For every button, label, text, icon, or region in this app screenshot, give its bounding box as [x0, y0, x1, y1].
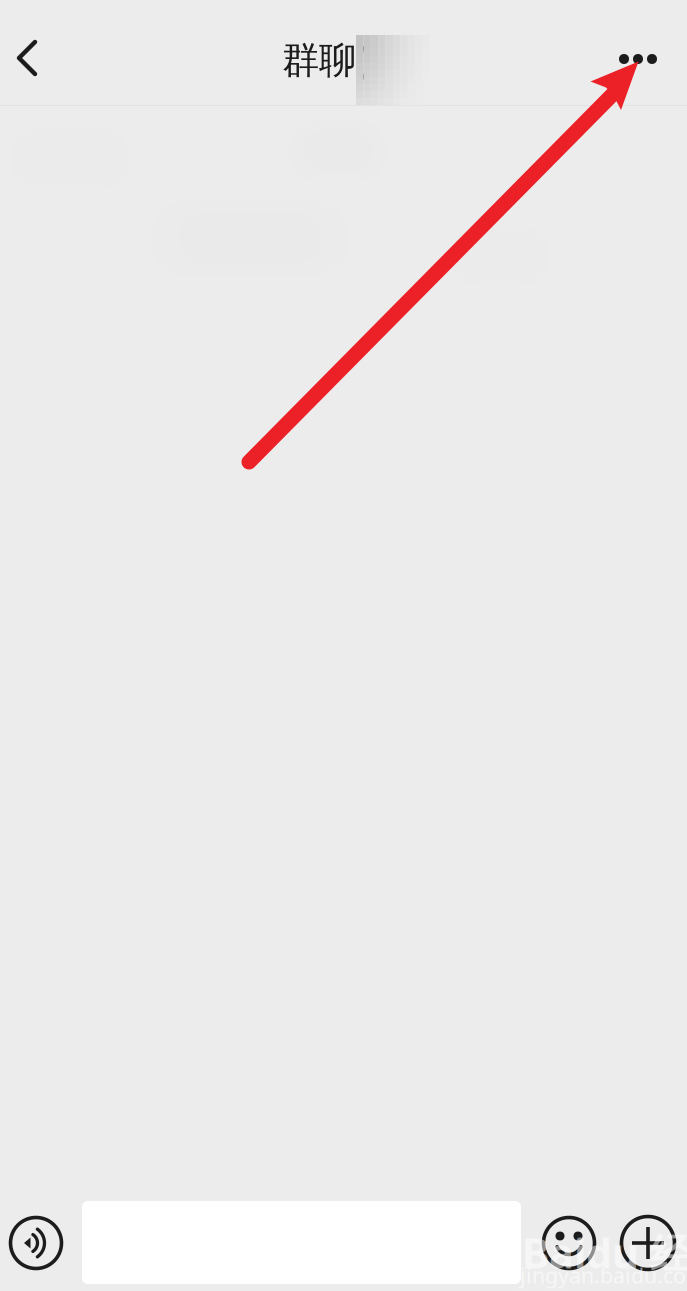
staticText: 群聊( — [282, 34, 368, 84]
staticText: jingyan.baidu.com — [520, 1261, 687, 1289]
button[interactable]: Emoji — [533, 1207, 605, 1279]
button[interactable]: Voice message — [0, 1207, 72, 1279]
staticText: Baidu 经验 — [522, 1225, 687, 1280]
button[interactable]: More options — [612, 1207, 684, 1279]
button[interactable]: More — [603, 29, 673, 89]
button[interactable]: Back — [1, 28, 53, 88]
